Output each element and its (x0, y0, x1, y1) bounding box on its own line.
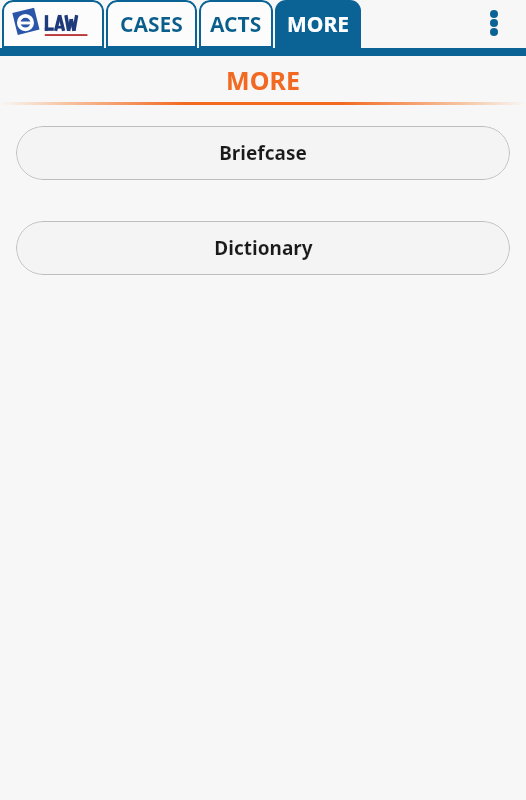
button[interactable]: More options (472, 0, 516, 46)
button[interactable]: Dictionary (16, 221, 510, 275)
staticText: MORE (226, 63, 300, 97)
button[interactable]: ACTS (199, 0, 273, 48)
button[interactable]: CASES (106, 0, 197, 48)
button[interactable]: eLaw home (2, 0, 104, 48)
staticText: MORE (287, 10, 349, 39)
staticText: ACTS (210, 10, 262, 39)
staticText: CASES (120, 10, 183, 39)
button[interactable]: MORE (275, 0, 361, 48)
button[interactable]: Briefcase (16, 126, 510, 180)
staticText: Briefcase (219, 140, 307, 166)
staticText: Dictionary (214, 235, 313, 261)
